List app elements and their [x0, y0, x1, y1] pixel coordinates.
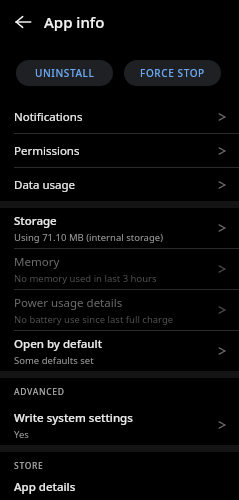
- staticText: Memory: [14, 254, 60, 270]
- staticText: Using 71.10 MB (internal storage): [14, 231, 163, 244]
- button[interactable]: Storage: [0, 208, 239, 248]
- staticText: No battery use since last full charge: [14, 313, 174, 326]
- staticText: Some defaults set: [14, 354, 94, 367]
- button[interactable]: App details: [0, 479, 239, 500]
- staticText: Storage: [14, 213, 57, 229]
- button[interactable]: Open by default: [0, 331, 239, 371]
- button[interactable]: Notifications: [0, 100, 239, 133]
- staticText: FORCE STOP: [140, 66, 205, 80]
- staticText: Write system settings: [14, 410, 133, 426]
- button[interactable]: Back: [10, 9, 36, 35]
- staticText: No memory used in last 3 hours: [14, 272, 157, 285]
- staticText: Yes: [14, 428, 29, 441]
- button[interactable]: Data usage: [0, 168, 239, 201]
- button[interactable]: Permissions: [0, 134, 239, 167]
- staticText: ADVANCED: [14, 386, 65, 398]
- staticText: App details: [14, 479, 76, 495]
- button[interactable]: UNINSTALL: [16, 60, 113, 86]
- staticText: Power usage details: [14, 295, 123, 311]
- staticText: Open by default: [14, 336, 103, 352]
- staticText: Data usage: [14, 177, 217, 193]
- button[interactable]: FORCE STOP: [124, 60, 221, 86]
- staticText: STORE: [14, 460, 44, 472]
- staticText: App info: [44, 12, 105, 32]
- button[interactable]: Write system settings: [0, 405, 239, 445]
- button[interactable]: Memory: [0, 249, 239, 289]
- staticText: UNINSTALL: [35, 66, 95, 80]
- staticText: Notifications: [14, 109, 217, 125]
- button[interactable]: Power usage details: [0, 290, 239, 330]
- staticText: Permissions: [14, 143, 217, 159]
